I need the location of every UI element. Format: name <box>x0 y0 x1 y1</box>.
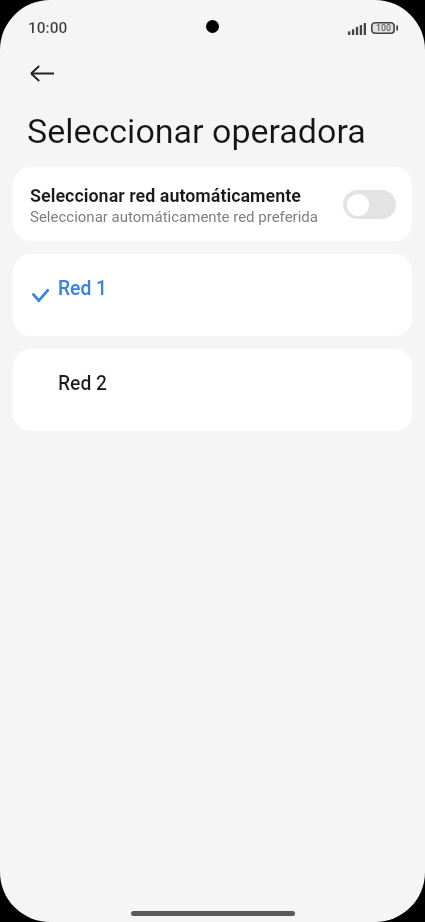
button[interactable]: Red 2 <box>13 349 412 431</box>
staticText: 10:00 <box>28 19 68 37</box>
staticText: 100 <box>376 23 391 33</box>
button[interactable]: Red 1 <box>13 254 412 336</box>
staticText: Seleccionar red automáticamente <box>30 185 302 206</box>
button[interactable]: Back <box>18 49 66 97</box>
staticText: Red 1 <box>58 277 108 300</box>
staticText: Seleccionar operadora <box>27 111 366 151</box>
staticText: Red 2 <box>58 372 108 395</box>
button[interactable]: Seleccionar red automáticamente <box>13 167 412 241</box>
staticText: Seleccionar automáticamente red preferid… <box>30 208 318 226</box>
button[interactable]: Toggle automatic network selection <box>343 190 396 219</box>
